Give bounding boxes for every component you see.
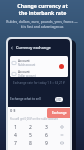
- button[interactable]: Subtract: [54, 131, 70, 139]
- button[interactable]: 2: [23, 123, 38, 131]
- staticText: Ruble account: [18, 63, 36, 67]
- staticText: 0 $: [10, 108, 16, 113]
- button[interactable]: 8: [23, 139, 38, 147]
- staticText: Exchange: [52, 111, 67, 115]
- staticText: Rubles, dollars, euro, pounds, yens, fra…: [6, 19, 78, 29]
- staticText: USD: [56, 98, 62, 102]
- button[interactable]: Add: [54, 123, 70, 131]
- staticText: 5: [29, 132, 32, 139]
- button[interactable]: 5: [23, 131, 38, 139]
- staticText: 1: [14, 124, 17, 131]
- button[interactable]: 7: [8, 139, 23, 147]
- staticText: Account: [18, 70, 30, 74]
- button[interactable]: 3: [38, 123, 54, 131]
- staticText: Change currency at the interbank rate: [17, 2, 68, 16]
- staticText: 6: [45, 132, 48, 139]
- staticText: You will get 0,00 ₽ on the ruble account: [10, 117, 58, 121]
- button[interactable]: Swap currencies: [59, 64, 64, 69]
- staticText: 3: [45, 124, 48, 131]
- button[interactable]: 1: [8, 123, 23, 131]
- staticText: 9: [45, 140, 48, 147]
- staticText: Account: [18, 59, 30, 63]
- button[interactable]: Exchange: [47, 108, 70, 118]
- button[interactable]: 6: [38, 131, 54, 139]
- button[interactable]: Back: [8, 42, 70, 53]
- staticText: Dollar account: [18, 74, 36, 77]
- button[interactable]: 9: [38, 139, 54, 147]
- staticText: 4: [14, 132, 17, 139]
- other: Back: [10, 46, 14, 50]
- button[interactable]: Delete: [54, 139, 70, 147]
- staticText: Exchange rate for today 1 $ = 63,21 ₽: [8, 81, 70, 85]
- staticText: Exchange what to sell: [10, 97, 41, 101]
- button[interactable]: USD: [55, 97, 63, 102]
- button[interactable]: 4: [8, 131, 23, 139]
- staticText: 7: [14, 140, 17, 147]
- staticText: 8: [29, 140, 32, 147]
- staticText: 2: [29, 124, 32, 131]
- staticText: Currency exchange: [16, 45, 51, 50]
